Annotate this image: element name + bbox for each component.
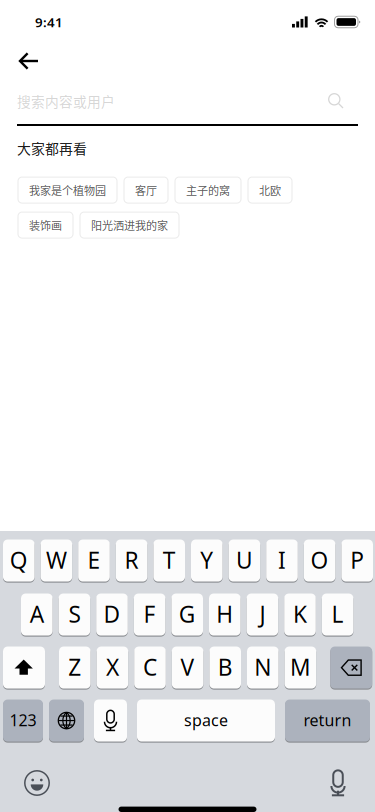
staticText: F [144, 599, 156, 629]
button[interactable]: Search [325, 90, 347, 112]
staticText: O [311, 545, 329, 575]
staticText: P [350, 545, 364, 575]
button[interactable]: E [78, 539, 110, 582]
staticText: D [103, 599, 120, 629]
staticText: H [216, 599, 233, 629]
staticText: 9:41 [35, 13, 63, 31]
staticText: R [125, 545, 139, 575]
button[interactable]: Emoji [15, 763, 59, 803]
button[interactable]: J [247, 593, 278, 636]
button[interactable]: U [229, 539, 260, 582]
staticText: Q [10, 545, 28, 575]
staticText: A [30, 599, 44, 629]
button[interactable]: D [96, 593, 128, 636]
button[interactable]: R [116, 539, 147, 582]
staticText: Z [68, 652, 81, 682]
button[interactable]: Back [9, 44, 49, 78]
button[interactable]: return [285, 699, 370, 742]
button[interactable]: X [97, 646, 128, 689]
button[interactable]: C [134, 646, 166, 689]
staticText: I [278, 545, 286, 575]
staticText: 大家都再看 [17, 138, 87, 158]
button[interactable]: L [322, 593, 353, 636]
button[interactable]: Dictate [94, 699, 127, 742]
button[interactable]: 客厅 [124, 177, 168, 203]
button[interactable]: Shift [3, 646, 45, 689]
button[interactable]: S [59, 593, 90, 636]
staticText: W [46, 545, 67, 575]
button[interactable]: 我家是个植物园 [18, 177, 117, 203]
button[interactable]: Dictation [316, 763, 360, 803]
staticText: E [87, 545, 100, 575]
button[interactable]: O [304, 539, 335, 582]
button[interactable]: V [172, 646, 203, 689]
button[interactable]: K [284, 593, 316, 636]
button[interactable]: Q [3, 539, 35, 582]
staticText: 装饰画 [29, 217, 62, 233]
button[interactable]: N [247, 646, 279, 689]
button[interactable]: 123 [3, 699, 43, 742]
staticText: X [106, 652, 119, 682]
button[interactable]: 阳光洒进我的家 [80, 212, 179, 238]
button[interactable]: Delete [330, 646, 372, 689]
button[interactable]: space [137, 699, 275, 742]
button[interactable]: M [285, 646, 316, 689]
staticText: C [143, 652, 157, 682]
staticText: N [254, 652, 271, 682]
staticText: M [290, 652, 311, 682]
staticText: V [181, 652, 195, 682]
staticText: 我家是个植物园 [29, 182, 106, 198]
staticText: K [293, 599, 307, 629]
button[interactable]: 主子的窝 [175, 177, 241, 203]
staticText: T [163, 545, 176, 575]
staticText: Y [200, 545, 213, 575]
button[interactable]: H [209, 593, 241, 636]
button[interactable]: Z [59, 646, 91, 689]
staticText: 主子的窝 [186, 182, 230, 198]
staticText: G [179, 599, 196, 629]
button[interactable]: W [41, 539, 72, 582]
staticText: 北欧 [259, 182, 281, 198]
staticText: J [259, 599, 265, 629]
button[interactable]: F [134, 593, 165, 636]
button[interactable]: Y [191, 539, 223, 582]
staticText: L [332, 599, 344, 629]
button[interactable]: Next keyboard [49, 699, 84, 742]
button[interactable]: I [266, 539, 298, 582]
button[interactable]: B [209, 646, 241, 689]
staticText: S [68, 599, 80, 629]
staticText: 阳光洒进我的家 [91, 217, 168, 233]
button[interactable]: P [341, 539, 373, 582]
staticText: 搜索内容或用户 [17, 91, 115, 111]
staticText: 123 [9, 709, 36, 731]
button[interactable]: 装饰画 [18, 212, 73, 238]
staticText: 客厅 [135, 182, 157, 198]
button[interactable]: A [21, 593, 53, 636]
staticText: B [218, 652, 233, 682]
staticText: space [184, 709, 228, 731]
button[interactable]: G [171, 593, 203, 636]
staticText: U [236, 545, 253, 575]
button[interactable]: T [153, 539, 185, 582]
button[interactable]: 北欧 [248, 177, 292, 203]
staticText: return [303, 709, 351, 731]
